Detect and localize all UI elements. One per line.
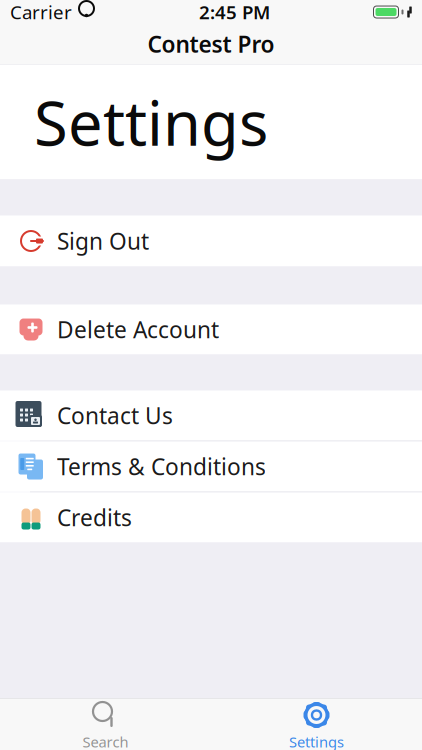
staticText: Settings: [34, 81, 268, 163]
button[interactable]: Credits: [0, 492, 422, 542]
staticText: Search: [82, 732, 128, 750]
staticText: Contest Pro: [147, 29, 274, 59]
button[interactable]: Contact Us: [0, 390, 422, 440]
staticText: Delete Account: [57, 314, 219, 344]
staticText: Settings: [289, 732, 344, 750]
button[interactable]: Settings: [211, 702, 422, 750]
staticText: Credits: [57, 502, 132, 532]
staticText: Sign Out: [57, 226, 149, 256]
staticText: Carrier: [10, 0, 72, 24]
staticText: Contact Us: [57, 400, 173, 430]
staticText: Terms & Conditions: [57, 451, 266, 481]
button[interactable]: Terms & Conditions: [0, 441, 422, 491]
button[interactable]: Sign Out: [0, 215, 422, 266]
staticText: 2:45 PM: [199, 0, 270, 24]
button[interactable]: Search: [0, 702, 211, 750]
button[interactable]: Delete Account: [0, 304, 422, 354]
